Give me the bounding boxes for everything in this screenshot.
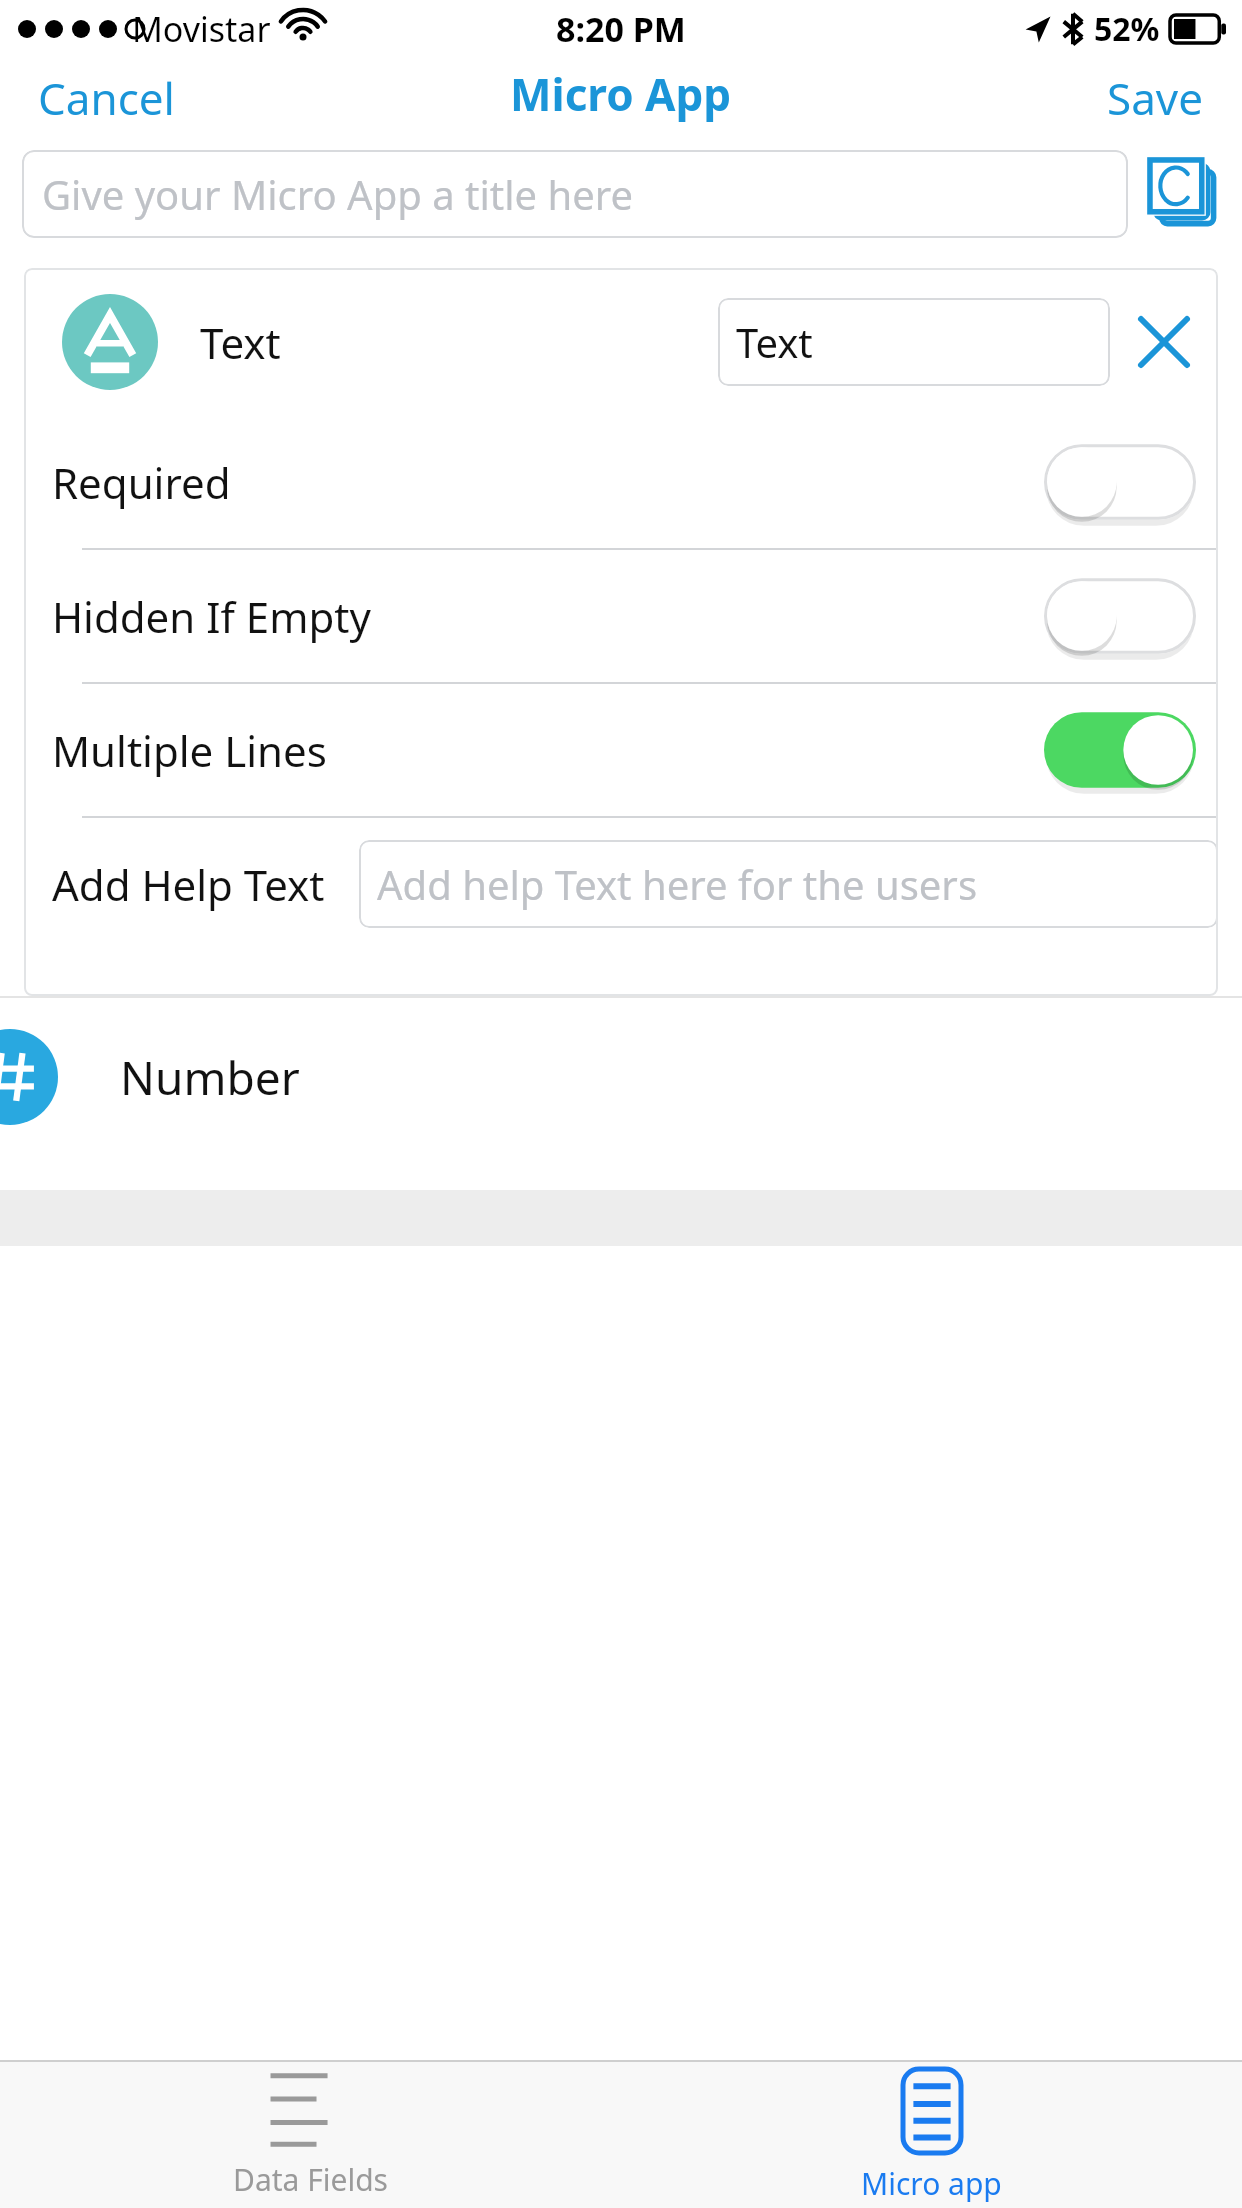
button[interactable]: Add Help Text [24,818,1218,950]
button[interactable]: Copy Micro App [1142,152,1226,236]
button[interactable] [1044,572,1196,660]
staticText: Add help Text here for the users [377,857,978,911]
button[interactable]: Give your Micro App a title here [22,150,1128,238]
button[interactable]: Save [1069,58,1242,130]
staticText: Give your Micro App a title here [42,167,634,221]
staticText: Add Help Text [52,856,325,913]
staticText: Micro app [861,2163,1002,2204]
button[interactable]: Hidden If Empty [24,550,1218,682]
button[interactable] [1044,706,1196,794]
staticText: Save [1107,68,1204,120]
staticText: Movistar [132,6,271,52]
staticText: Text [736,315,813,369]
staticText: 8:20 PM [556,6,686,52]
staticText: Text [200,314,281,371]
staticText: 52% [1094,7,1160,51]
staticText: Required [52,454,231,511]
staticText: Number [120,1046,300,1109]
button[interactable]: Number [0,996,1242,1158]
button[interactable]: Cancel [0,58,213,130]
staticText: Micro App [510,64,732,124]
staticText: Hidden If Empty [52,588,371,645]
button[interactable]: Multiple Lines [24,684,1218,816]
button[interactable]: Required [24,416,1218,548]
button[interactable] [1044,438,1196,526]
button[interactable]: Micro app [621,2062,1242,2208]
button[interactable]: Text [718,298,1110,386]
button[interactable]: Text [24,268,1218,416]
staticText: Data Fields [233,2159,388,2200]
button[interactable]: Data Fields [0,2062,621,2208]
staticText: Multiple Lines [52,722,327,779]
button[interactable]: Remove field [1132,310,1196,374]
staticText: Cancel [38,68,175,120]
